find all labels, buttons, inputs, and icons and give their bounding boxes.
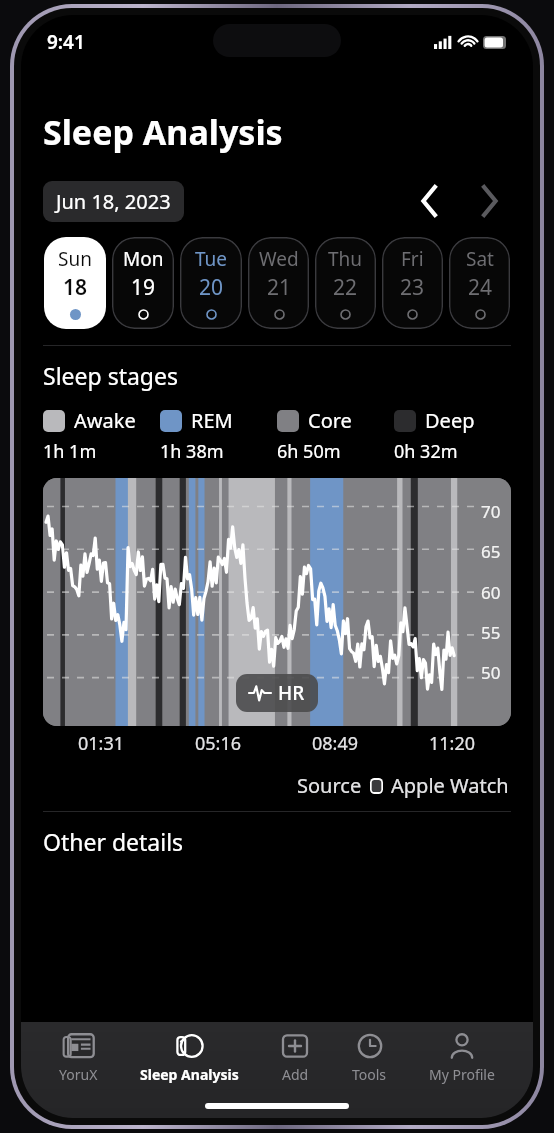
staticText: 0h 32m [394, 439, 458, 464]
staticText: Fri [401, 246, 424, 272]
staticText: Tue [195, 246, 228, 272]
staticText: Jun 18, 2023 [56, 188, 171, 215]
staticText: 22 [333, 273, 358, 302]
button[interactable]: My Profile [425, 1030, 499, 1086]
staticText: 24 [468, 273, 493, 302]
staticText: Tools [352, 1065, 387, 1084]
button[interactable]: Wed [248, 237, 309, 329]
staticText: Mon [123, 246, 164, 272]
staticText: Deep [425, 407, 475, 434]
button[interactable]: Sat [449, 237, 510, 329]
button[interactable]: Sleep Analysis [136, 1030, 243, 1086]
button[interactable]: Tools [348, 1030, 391, 1086]
button[interactable]: Mon [112, 237, 174, 329]
button[interactable]: Next day [467, 179, 511, 223]
button[interactable]: Jun 18, 2023 [43, 181, 184, 222]
staticText: 11:20 [429, 731, 476, 756]
staticText: 05:16 [195, 731, 242, 756]
staticText: 60 [481, 581, 501, 604]
staticText: 50 [481, 661, 501, 684]
button[interactable]: Tue [180, 237, 242, 329]
staticText: Sat [466, 246, 494, 272]
staticText: REM [191, 407, 233, 434]
staticText: 01:31 [78, 731, 125, 756]
staticText: Source [297, 772, 362, 799]
staticText: Sleep Analysis [43, 109, 283, 155]
staticText: HR [278, 680, 305, 706]
button[interactable]: HR [236, 674, 318, 712]
staticText: Sun [58, 246, 92, 272]
staticText: Other details [43, 826, 184, 857]
staticText: Apple Watch [391, 772, 509, 799]
button[interactable]: Add [276, 1030, 314, 1086]
staticText: 20 [199, 273, 224, 302]
staticText: 1h 1m [43, 439, 97, 464]
staticText: Awake [74, 407, 136, 434]
staticText: 23 [400, 273, 425, 302]
staticText: 70 [481, 500, 501, 523]
button[interactable]: Thu [315, 237, 376, 329]
button[interactable]: Previous day [407, 179, 451, 223]
staticText: 1h 38m [160, 439, 224, 464]
staticText: 9:41 [47, 29, 85, 55]
staticText: Wed [259, 246, 299, 272]
button[interactable]: Sleep stages chart [43, 478, 511, 726]
button[interactable]: Sun [44, 237, 106, 329]
staticText: Sleep Analysis [140, 1065, 239, 1084]
button[interactable]: Fri [382, 237, 443, 329]
staticText: 21 [267, 273, 292, 302]
button[interactable]: YoruX [55, 1030, 102, 1086]
staticText: 18 [63, 273, 88, 302]
staticText: 55 [481, 621, 501, 644]
staticText: 6h 50m [277, 439, 341, 464]
staticText: Sleep stages [43, 360, 178, 391]
staticText: My Profile [429, 1065, 495, 1084]
staticText: Core [308, 407, 352, 434]
staticText: Add [282, 1065, 309, 1084]
staticText: 19 [131, 273, 156, 302]
staticText: 08:49 [312, 731, 359, 756]
staticText: YoruX [59, 1065, 98, 1084]
staticText: 65 [481, 540, 501, 563]
staticText: Thu [328, 246, 363, 272]
